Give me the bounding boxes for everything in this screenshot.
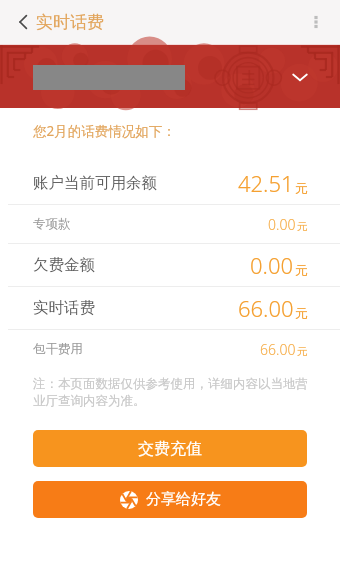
staticText: 分享给好友 [146,490,221,509]
staticText: 包干费用 [33,341,83,357]
staticText: 元 [295,180,308,196]
staticText: 42.51 [238,168,294,198]
button[interactable]: 账户当前可用余额 [0,162,340,204]
staticText: 0.00 [250,250,294,280]
staticText: 欠费金额 [33,255,95,275]
button[interactable]: 交费充值 [33,430,307,467]
staticText: 账户当前可用余额 [33,173,157,193]
staticText: 专项款 [33,216,71,232]
staticText: 元 [295,262,308,278]
button[interactable]: Expand [0,45,340,108]
other: Expand [286,63,314,91]
button[interactable]: 专项款 [0,205,340,243]
staticText: 66.00 [260,340,296,359]
staticText: 元 [295,305,308,321]
staticText: 您2月的话费情况如下： [33,122,176,140]
staticText: 元 [297,220,308,233]
staticText: 交费充值 [138,439,202,459]
staticText: 66.00 [238,293,294,323]
staticText: 0.00 [268,215,296,234]
button[interactable]: 分享 [33,481,307,518]
button[interactable]: Back [6,4,42,40]
button[interactable]: 欠费金额 [0,244,340,286]
button[interactable]: 包干费用 [0,330,340,368]
staticText: 实时话费 [33,298,95,318]
staticText: 注：本页面数据仅供参考使用，详细内容以当地营业厅查询内容为准。 [33,376,312,408]
staticText: 实时话费 [36,12,104,33]
button[interactable]: 实时话费 [0,287,340,329]
button[interactable]: More options [298,4,334,40]
staticText: 元 [297,345,308,358]
